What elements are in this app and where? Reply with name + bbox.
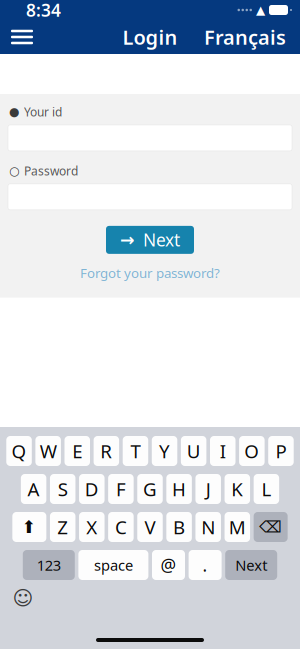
staticText: @	[160, 553, 176, 576]
staticText: Your id	[24, 104, 62, 120]
button[interactable]: V	[137, 512, 163, 542]
staticText: 123	[37, 555, 61, 575]
staticText: A	[28, 477, 40, 501]
staticText: O	[244, 439, 259, 463]
staticText: .	[203, 553, 208, 576]
staticText: B	[173, 515, 185, 539]
button[interactable]: Next	[225, 550, 277, 580]
staticText: W	[40, 439, 57, 463]
staticText: N	[201, 515, 215, 539]
staticText: 8:34	[26, 0, 61, 21]
staticText: ☺	[12, 587, 33, 609]
button[interactable]: Emoji	[8, 586, 38, 610]
button[interactable]: O	[239, 436, 265, 466]
button[interactable]: A	[21, 474, 46, 504]
button[interactable]: M	[224, 512, 250, 542]
staticText: D	[85, 477, 99, 501]
staticText: Forgot your password?	[80, 264, 220, 282]
staticText: V	[144, 515, 155, 539]
staticText: S	[58, 477, 68, 501]
staticText: Password	[24, 163, 78, 179]
button[interactable]: space	[78, 550, 148, 580]
button[interactable]: Y	[152, 436, 177, 466]
staticText: G	[143, 477, 157, 501]
button[interactable]: Français	[196, 20, 294, 54]
button[interactable]: →	[106, 226, 194, 254]
button[interactable]: Forgot your password?	[74, 260, 226, 286]
button[interactable]: I	[210, 436, 235, 466]
staticText: J	[206, 477, 211, 501]
staticText: ●	[9, 105, 19, 119]
button[interactable]: J	[195, 474, 221, 504]
button[interactable]: L	[254, 474, 279, 504]
staticText: F	[116, 477, 126, 501]
staticText: Français	[204, 24, 286, 50]
staticText: ▲	[256, 3, 265, 17]
button[interactable]: Z	[50, 512, 75, 542]
button[interactable]: 123	[23, 550, 75, 580]
button[interactable]: T	[123, 436, 148, 466]
staticText: P	[275, 439, 286, 463]
staticText: Login	[122, 24, 177, 50]
staticText: Next	[143, 228, 180, 251]
staticText: Q	[12, 439, 27, 463]
staticText: K	[231, 477, 243, 501]
button[interactable]: P	[268, 436, 294, 466]
staticText: ○	[9, 164, 19, 178]
staticText: H	[172, 477, 186, 501]
button[interactable]: N	[195, 512, 221, 542]
button[interactable]: U	[181, 436, 206, 466]
button[interactable]: Q	[6, 436, 32, 466]
button[interactable]: H	[166, 474, 192, 504]
button[interactable]: K	[224, 474, 250, 504]
button[interactable]: D	[79, 474, 104, 504]
staticText: E	[72, 439, 82, 463]
staticText: space	[94, 555, 133, 575]
button[interactable]: @	[152, 550, 185, 580]
staticText: X	[86, 515, 97, 539]
button[interactable]: B	[166, 512, 192, 542]
button[interactable]: C	[108, 512, 134, 542]
button[interactable]: W	[35, 436, 61, 466]
staticText: U	[187, 439, 201, 463]
staticText: Y	[159, 439, 170, 463]
staticText: L	[261, 477, 271, 501]
button[interactable]: Delete	[254, 512, 288, 542]
button[interactable]: F	[108, 474, 134, 504]
button[interactable]: .	[189, 550, 222, 580]
button[interactable]: X	[79, 512, 104, 542]
staticText: M	[229, 515, 246, 539]
button[interactable]: G	[137, 474, 163, 504]
button[interactable]: S	[50, 474, 75, 504]
staticText: Z	[57, 515, 68, 539]
staticText: ⬆	[22, 517, 37, 537]
button[interactable]: E	[64, 436, 90, 466]
staticText: →	[120, 230, 135, 250]
staticText: ⌫	[259, 518, 282, 536]
staticText: T	[130, 439, 140, 463]
staticText: Next	[235, 555, 267, 575]
button[interactable]: R	[94, 436, 119, 466]
staticText: C	[115, 515, 127, 539]
staticText: I	[220, 439, 226, 463]
button[interactable]: Menu	[0, 20, 44, 54]
staticText: R	[100, 439, 112, 463]
button[interactable]: Shift	[12, 512, 46, 542]
